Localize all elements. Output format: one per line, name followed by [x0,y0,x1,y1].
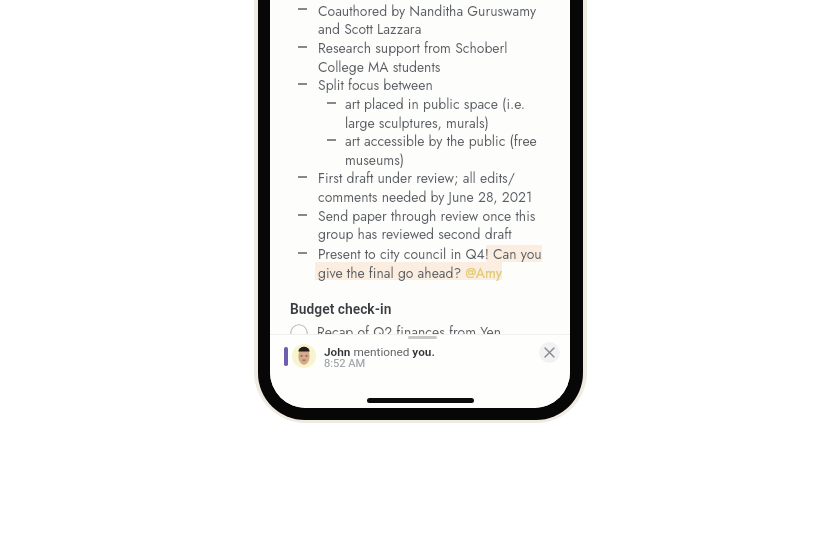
staticText: 8:52 AM [324,357,366,369]
staticText: group has reviewed second draft [318,224,512,243]
staticText: Budget check-in [290,301,392,317]
staticText: College MA students [318,57,441,76]
staticText: Send paper through review once this [318,206,536,225]
staticText: art accessible by the public (free [345,131,537,150]
staticText: art placed in public space (i.e. [345,94,525,113]
button[interactable]: Dismiss notification [539,342,560,363]
staticText: give the final go ahead? @Amy [318,263,502,282]
staticText: Research support from Schoberl [318,38,508,57]
staticText: and Scott Lazzara [318,19,422,38]
button[interactable]: Mark checklist item complete [290,324,308,342]
staticText: First draft under review; all edits/ [318,168,515,187]
staticText: John mentioned you. [324,345,435,359]
staticText: Split focus between [318,75,433,94]
staticText: Present to city council in Q4! Can you [318,244,542,263]
staticText: large sculptures, murals) [345,113,489,132]
staticText: Coauthored by Nanditha Guruswamy [318,1,537,20]
staticText: Recap of Q2 finances from Yen [317,322,502,341]
staticText: museums) [345,150,405,169]
button[interactable]: John mentioned you. [270,341,570,372]
staticText: comments needed by June 28, 2021 [318,187,533,206]
